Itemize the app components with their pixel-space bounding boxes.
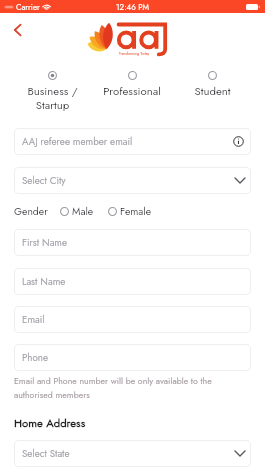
staticText: Last Name <box>22 275 66 289</box>
button[interactable]: Email <box>14 306 251 333</box>
button[interactable]: Phone <box>14 344 251 371</box>
staticText: 12:46 PM <box>116 1 150 13</box>
staticText: Carrier <box>16 1 40 13</box>
staticText: Email <box>22 313 45 327</box>
staticText: First Name <box>22 236 68 250</box>
button[interactable]: First Name <box>14 229 251 256</box>
staticText: Business / Startup <box>27 83 78 113</box>
staticText: Male <box>72 204 94 218</box>
staticText: Select City <box>22 174 66 188</box>
button[interactable]: Male <box>60 204 94 218</box>
staticText: Email and Phone number will be only avai… <box>14 375 251 401</box>
staticText: Select State <box>22 447 70 461</box>
staticText: Professional <box>103 83 161 99</box>
button[interactable]: Business / Startup <box>13 71 92 113</box>
button[interactable]: AAJ referee member email <box>14 128 251 155</box>
staticText: Transforming Today <box>119 51 150 56</box>
button[interactable]: Select State <box>14 440 251 467</box>
button[interactable]: Last Name <box>14 268 251 295</box>
staticText: Phone <box>22 351 49 365</box>
staticText: Female <box>120 204 152 218</box>
button[interactable]: Back <box>8 20 28 40</box>
staticText: Student <box>194 83 231 99</box>
staticText: Home Address <box>14 415 86 431</box>
button[interactable]: Select City <box>14 167 251 194</box>
staticText: AAJ referee member email <box>22 135 133 149</box>
staticText: Gender <box>14 204 48 218</box>
button[interactable]: Professional <box>92 71 172 99</box>
button[interactable]: Student <box>172 71 252 99</box>
button[interactable]: Female <box>108 204 152 218</box>
